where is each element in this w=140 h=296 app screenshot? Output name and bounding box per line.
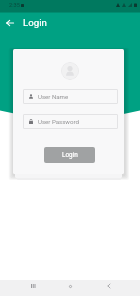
- button[interactable]: User Password: [23, 114, 118, 129]
- button[interactable]: Home: [60, 278, 80, 294]
- button[interactable]: Back: [3, 16, 17, 30]
- button[interactable]: Recent apps: [23, 278, 43, 294]
- button[interactable]: Login: [44, 147, 95, 163]
- staticText: User Password: [38, 118, 79, 125]
- button[interactable]: User Name: [23, 89, 118, 104]
- button[interactable]: Back: [99, 278, 119, 294]
- staticText: Login: [62, 151, 78, 159]
- staticText: User Name: [38, 93, 69, 100]
- staticText: Login: [23, 17, 47, 28]
- staticText: 2:35: [9, 2, 20, 9]
